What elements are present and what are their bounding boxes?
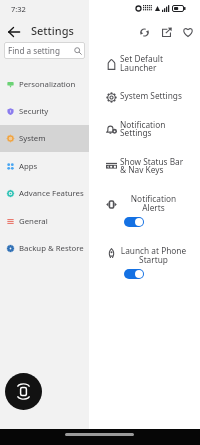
button[interactable]: Apps xyxy=(0,153,89,180)
button[interactable]: Rotate screen xyxy=(5,373,42,410)
staticText: Show Status Bar xyxy=(120,156,200,167)
staticText: Notification xyxy=(120,193,187,204)
button[interactable]: Personalization xyxy=(0,71,89,98)
button[interactable]: Share xyxy=(157,23,175,41)
staticText: Personalization xyxy=(19,79,76,90)
button[interactable]: Toggle xyxy=(124,269,144,279)
staticText: Find a setting xyxy=(8,45,60,56)
staticText: 7:32 xyxy=(11,4,26,14)
staticText: Advance Features xyxy=(19,188,84,199)
button[interactable] xyxy=(92,240,200,266)
staticText: Backup & Restore xyxy=(19,243,84,254)
button[interactable]: Advance Features xyxy=(0,180,89,207)
staticText: Alerts xyxy=(120,202,187,213)
staticText: Startup xyxy=(120,254,187,265)
button[interactable]: Toggle xyxy=(124,217,144,227)
staticText: Set Default xyxy=(120,53,200,64)
button[interactable] xyxy=(92,85,200,103)
button[interactable]: Security xyxy=(0,98,89,125)
staticText: Apps xyxy=(19,161,38,172)
button[interactable]: Back xyxy=(4,22,23,41)
staticText: Settings xyxy=(120,127,200,138)
staticText: Settings xyxy=(31,23,74,38)
staticText: General xyxy=(19,216,48,227)
button[interactable]: Find a setting xyxy=(4,42,85,59)
button[interactable]: Backup & Restore xyxy=(0,235,89,262)
staticText: & Nav Keys xyxy=(120,164,200,175)
staticText: System Settings xyxy=(120,90,200,101)
button[interactable] xyxy=(92,48,200,74)
button[interactable] xyxy=(92,114,200,140)
staticText: Notification xyxy=(120,119,200,130)
button[interactable]: Refresh xyxy=(135,23,153,41)
button[interactable] xyxy=(92,188,200,214)
button[interactable]: Favorite xyxy=(179,23,197,41)
staticText: Launch at Phone xyxy=(120,245,187,256)
staticText: Security xyxy=(19,106,49,117)
button[interactable] xyxy=(92,151,200,177)
button[interactable]: System xyxy=(0,125,89,152)
button[interactable]: General xyxy=(0,208,89,235)
staticText: System xyxy=(19,133,46,144)
staticText: Launcher xyxy=(120,62,200,73)
